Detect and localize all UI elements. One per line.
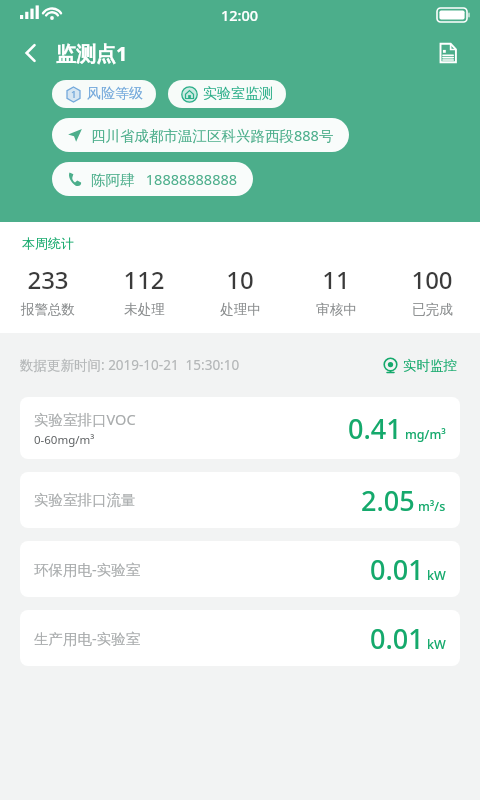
button[interactable]: 生产用电-实验室 [20, 610, 460, 666]
staticText: 审核中 [316, 301, 357, 318]
button[interactable]: 实验室排口流量 [20, 472, 460, 528]
staticText: 12:00 [221, 5, 259, 25]
staticText: 0-60mg/m³ [34, 432, 95, 448]
button[interactable]: 1 [52, 80, 156, 108]
staticText: 0.01 [370, 620, 424, 657]
staticText: 陈阿肆 18888888888 [91, 169, 238, 189]
staticText: 监测点1 [56, 40, 128, 67]
button[interactable]: 11 [288, 263, 384, 318]
staticText: 0.41 [348, 410, 402, 447]
staticText: 实时监控 [403, 357, 457, 374]
button[interactable]: 四川省成都市温江区科兴路西段888号 [52, 118, 349, 152]
staticText: mg/m³ [405, 426, 446, 443]
button[interactable]: 实验室监测 [168, 80, 286, 108]
staticText: 本周统计 [22, 235, 74, 251]
staticText: kW [427, 636, 446, 653]
staticText: 10 [226, 263, 254, 296]
staticText: 环保用电-实验室 [34, 559, 141, 579]
button[interactable]: 环保用电-实验室 [20, 541, 460, 597]
button[interactable]: 112 [96, 263, 192, 318]
button[interactable]: 实时监控 [380, 354, 460, 377]
staticText: 11 [322, 263, 350, 296]
staticText: 233 [27, 263, 69, 296]
button[interactable]: 实验室排口VOC [20, 397, 460, 459]
staticText: 1 [71, 88, 77, 101]
staticText: 四川省成都市温江区科兴路西段888号 [91, 125, 334, 145]
staticText: 报警总数 [21, 301, 75, 318]
staticText: 112 [123, 263, 165, 296]
button[interactable]: 100 [384, 263, 480, 318]
staticText: 实验室监测 [203, 85, 273, 103]
staticText: 风险等级 [87, 85, 143, 103]
button[interactable]: 陈阿肆 18888888888 [52, 162, 253, 196]
staticText: 未处理 [124, 301, 165, 318]
staticText: m³/s [418, 498, 446, 515]
staticText: 已完成 [412, 301, 453, 318]
button[interactable]: Back [14, 36, 48, 70]
button[interactable]: 233 [0, 263, 96, 318]
staticText: kW [427, 567, 446, 584]
staticText: 2.05 [361, 482, 415, 519]
staticText: 实验室排口流量 [34, 491, 136, 509]
staticText: 0.01 [370, 551, 424, 588]
button[interactable]: 10 [192, 263, 288, 318]
staticText: 生产用电-实验室 [34, 628, 141, 648]
staticText: 实验室排口VOC [34, 409, 136, 429]
staticText: 处理中 [220, 301, 261, 318]
staticText: 数据更新时间: 2019-10-21 15:30:10 [20, 356, 240, 374]
staticText: 100 [411, 263, 453, 296]
button[interactable]: Report [430, 35, 466, 71]
